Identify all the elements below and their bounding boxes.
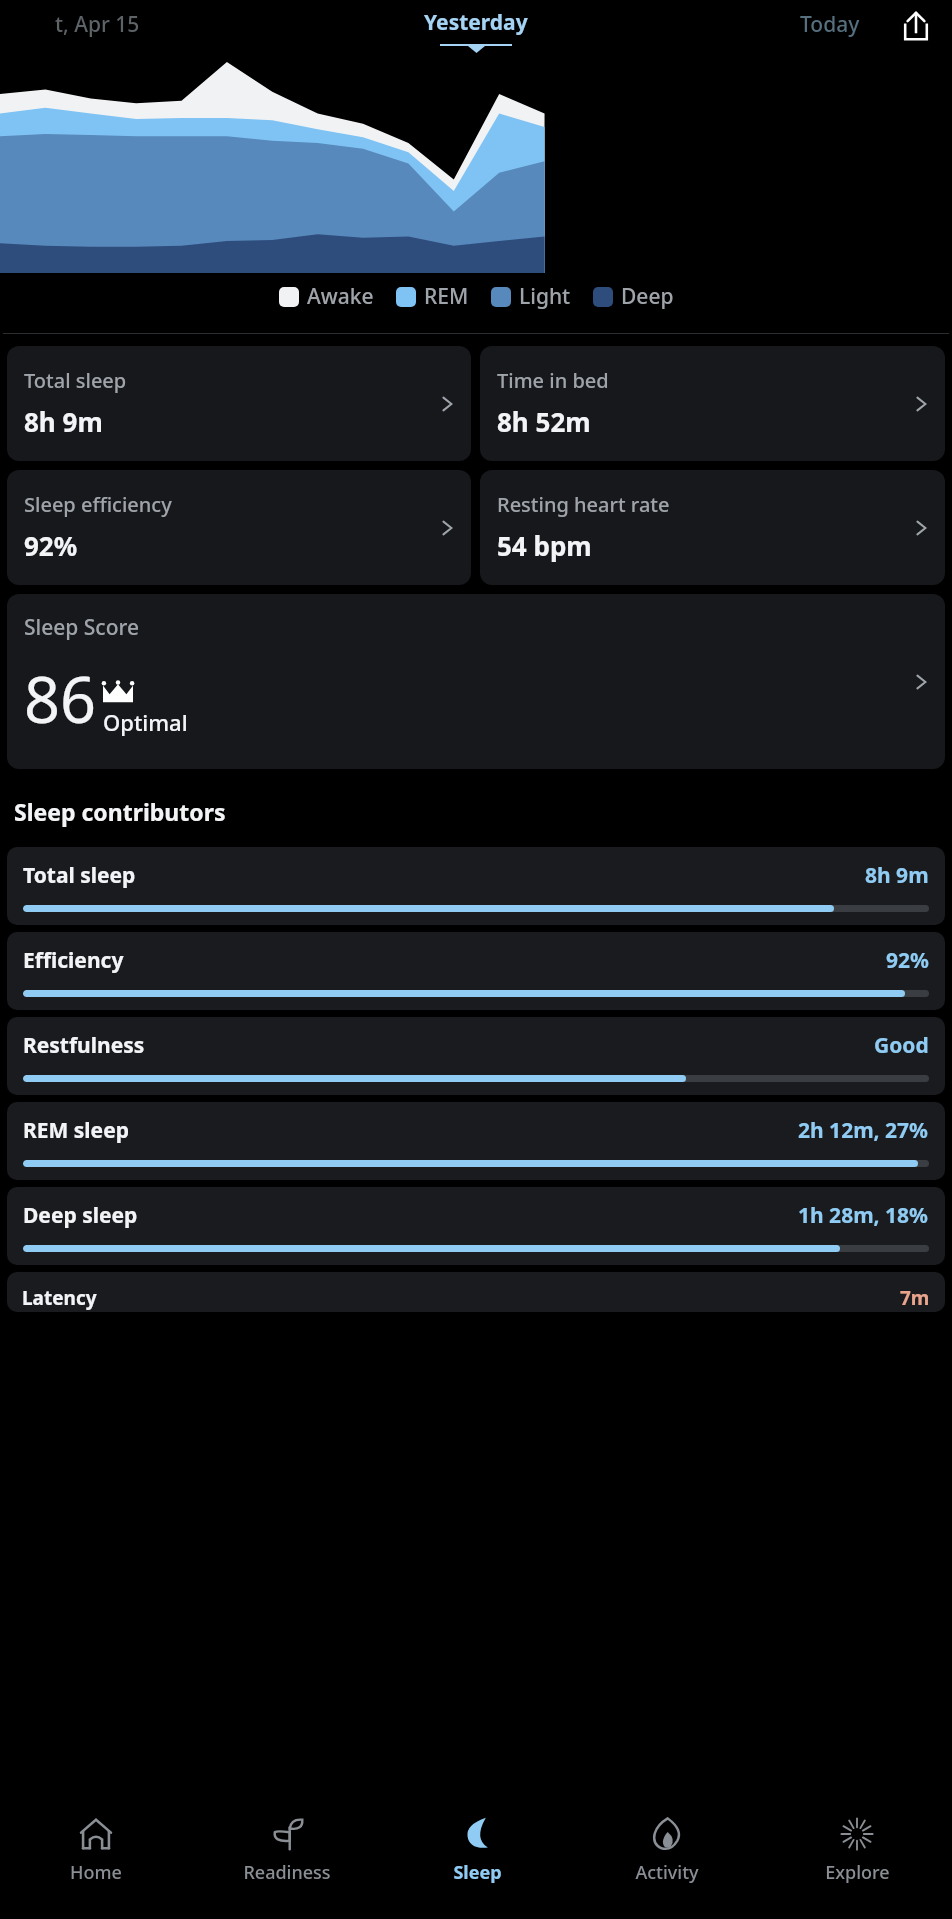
staticText: 54 bpm bbox=[497, 528, 592, 563]
button[interactable]: Yesterday bbox=[424, 8, 528, 53]
staticText: Time in bed bbox=[497, 367, 609, 394]
button[interactable]: REM sleep bbox=[7, 1102, 945, 1180]
button[interactable]: Deep sleep bbox=[7, 1187, 945, 1265]
staticText: Yesterday bbox=[424, 8, 528, 37]
button[interactable]: Explore bbox=[762, 1801, 952, 1919]
staticText: Latency bbox=[22, 1285, 97, 1311]
staticText: Restfulness bbox=[23, 1031, 145, 1060]
staticText: Sleep efficiency bbox=[24, 491, 172, 518]
staticText: 8h 9m bbox=[24, 404, 103, 439]
button[interactable]: REM bbox=[396, 282, 469, 311]
button[interactable]: Today bbox=[800, 10, 860, 39]
staticText: Sleep contributors bbox=[14, 796, 226, 827]
staticText: Explore bbox=[825, 1860, 890, 1885]
staticText: Awake bbox=[307, 282, 374, 311]
button[interactable]: Time in bed bbox=[480, 346, 945, 461]
button[interactable]: Deep bbox=[593, 282, 674, 311]
button[interactable]: Total sleep bbox=[7, 346, 471, 461]
button[interactable]: Latency bbox=[7, 1272, 945, 1312]
button[interactable]: Home bbox=[0, 1801, 191, 1919]
staticText: Resting heart rate bbox=[497, 491, 670, 518]
staticText: Efficiency bbox=[23, 946, 124, 975]
staticText: Activity bbox=[635, 1860, 699, 1885]
staticText: Sleep Score bbox=[24, 613, 140, 642]
button[interactable]: t, Apr 15 bbox=[55, 10, 140, 39]
button[interactable]: Sleep bbox=[382, 1801, 572, 1919]
button[interactable]: Share bbox=[894, 4, 938, 48]
button[interactable]: Awake bbox=[279, 282, 374, 311]
staticText: 8h 9m bbox=[865, 861, 929, 890]
button[interactable]: Total sleep bbox=[7, 847, 945, 925]
staticText: Deep sleep bbox=[23, 1201, 138, 1230]
staticText: REM sleep bbox=[23, 1116, 129, 1145]
staticText: Deep bbox=[621, 282, 674, 311]
staticText: 86 bbox=[24, 656, 97, 742]
staticText: Home bbox=[70, 1860, 122, 1885]
button[interactable]: Resting heart rate bbox=[480, 470, 945, 585]
staticText: t, Apr 15 bbox=[55, 10, 140, 39]
staticText: 92% bbox=[886, 946, 929, 975]
staticText: Sleep bbox=[453, 1860, 502, 1885]
button[interactable]: Light bbox=[491, 282, 571, 311]
button[interactable]: Sleep efficiency bbox=[7, 470, 471, 585]
button[interactable]: Sleep Score bbox=[7, 594, 945, 769]
button[interactable]: Activity bbox=[572, 1801, 762, 1919]
button[interactable]: Restfulness bbox=[7, 1017, 945, 1095]
staticText: Readiness bbox=[243, 1860, 331, 1885]
staticText: 2h 12m, 27% bbox=[798, 1116, 929, 1145]
staticText: 7m bbox=[900, 1285, 930, 1311]
staticText: 8h 52m bbox=[497, 404, 591, 439]
staticText: Today bbox=[800, 10, 860, 39]
staticText: 92% bbox=[24, 528, 78, 563]
staticText: REM bbox=[424, 282, 469, 311]
staticText: Optimal bbox=[103, 707, 188, 737]
staticText: Total sleep bbox=[24, 367, 127, 394]
staticText: Light bbox=[519, 282, 571, 311]
button[interactable]: Readiness bbox=[191, 1801, 382, 1919]
staticText: 1h 28m, 18% bbox=[798, 1201, 929, 1230]
button[interactable]: Efficiency bbox=[7, 932, 945, 1010]
staticText: Total sleep bbox=[23, 861, 136, 890]
staticText: Good bbox=[874, 1031, 929, 1060]
